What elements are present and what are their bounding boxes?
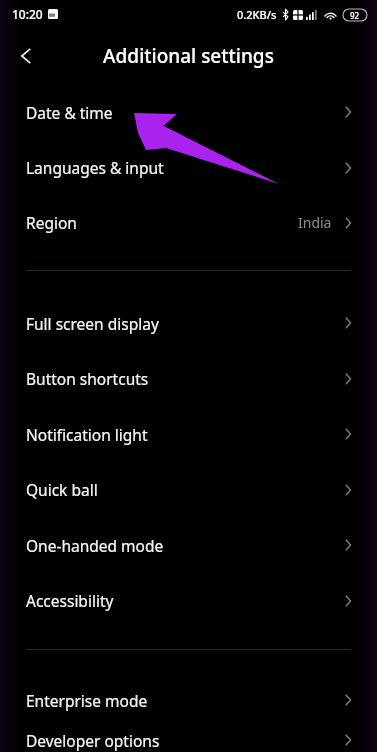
button[interactable]: Button shortcuts <box>0 351 377 406</box>
staticText: One-handed mode <box>26 535 164 556</box>
button[interactable]: Accessibility <box>0 573 377 628</box>
button[interactable]: Region <box>0 195 377 250</box>
button[interactable]: Date & time <box>0 84 377 140</box>
button[interactable]: Quick ball <box>0 462 377 517</box>
staticText: Quick ball <box>26 479 98 500</box>
button[interactable]: Back <box>0 30 52 82</box>
staticText: India <box>298 213 332 232</box>
staticText: 92 <box>350 10 360 21</box>
staticText: 10:20 <box>12 6 43 22</box>
button[interactable]: Languages & input <box>0 140 377 195</box>
button[interactable]: Enterprise mode <box>0 672 377 728</box>
staticText: Notification light <box>26 424 148 445</box>
staticText: Full screen display <box>26 313 159 334</box>
staticText: Button shortcuts <box>26 368 149 389</box>
staticText: Region <box>26 212 77 233</box>
button[interactable]: Full screen display <box>0 295 377 351</box>
staticText: 0.2KB/s <box>237 7 277 22</box>
button[interactable]: Notification light <box>0 406 377 462</box>
staticText: Accessibility <box>26 590 114 611</box>
button[interactable]: One-handed mode <box>0 517 377 573</box>
staticText: Developer options <box>26 730 160 751</box>
button[interactable]: Developer options <box>0 728 377 752</box>
staticText: Languages & input <box>26 157 164 178</box>
staticText: Additional settings <box>103 43 274 69</box>
staticText: Enterprise mode <box>26 690 148 711</box>
staticText: Date & time <box>26 102 113 123</box>
